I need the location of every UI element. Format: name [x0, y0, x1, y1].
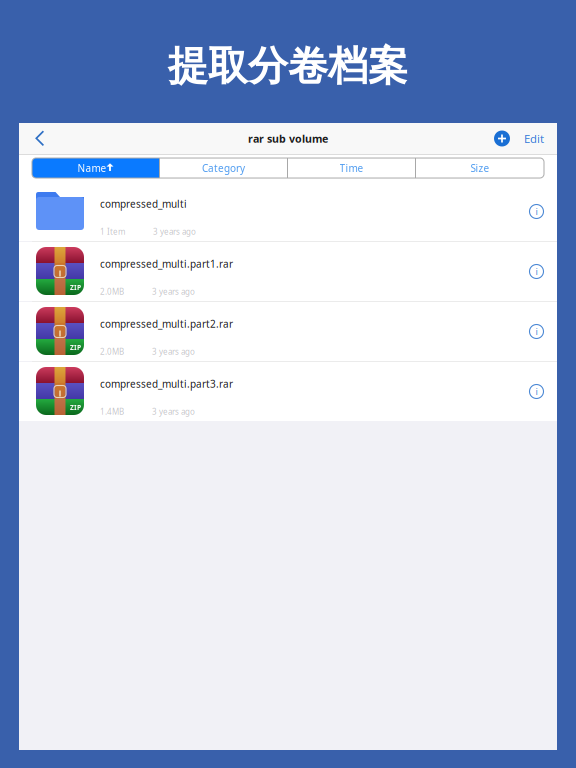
button[interactable]: Edit — [517, 123, 557, 153]
button[interactable]: Category — [160, 158, 287, 178]
button[interactable]: Name — [32, 158, 159, 178]
staticText: ZIP — [70, 403, 81, 412]
staticText: i — [535, 265, 537, 278]
staticText: Name — [77, 161, 106, 175]
staticText: i — [535, 325, 537, 338]
staticText: 1 Item — [100, 226, 125, 237]
staticText: compressed_multi.part1.rar — [100, 257, 233, 271]
staticText: Size — [470, 161, 489, 175]
staticText: compressed_multi — [100, 197, 187, 211]
button[interactable]: compressed_multi — [19, 182, 557, 241]
button[interactable]: Size — [416, 158, 544, 178]
staticText: 2.0MB — [100, 286, 124, 297]
staticText: Category — [202, 161, 245, 175]
button[interactable]: Back — [21, 123, 59, 153]
button[interactable]: Time — [288, 158, 415, 178]
staticText: ZIP — [70, 283, 81, 292]
staticText: 提取分卷档案 — [168, 41, 408, 91]
staticText: Edit — [524, 131, 544, 146]
button[interactable]: ZIP — [19, 242, 557, 301]
staticText: rar sub volume — [248, 131, 328, 146]
staticText: Time — [339, 161, 363, 175]
staticText: compressed_multi.part2.rar — [100, 317, 233, 331]
staticText: compressed_multi.part3.rar — [100, 377, 233, 391]
staticText: i — [535, 385, 537, 398]
staticText: 1.4MB — [100, 406, 124, 417]
button[interactable]: Add — [484, 123, 517, 153]
staticText: 3 years ago — [152, 286, 195, 297]
staticText: ZIP — [70, 343, 81, 352]
staticText: 2.0MB — [100, 346, 124, 357]
button[interactable]: ZIP — [19, 362, 557, 421]
staticText: i — [535, 205, 537, 218]
staticText: 3 years ago — [153, 226, 196, 237]
staticText: 3 years ago — [152, 406, 195, 417]
staticText: 3 years ago — [152, 346, 195, 357]
button[interactable]: ZIP — [19, 302, 557, 361]
